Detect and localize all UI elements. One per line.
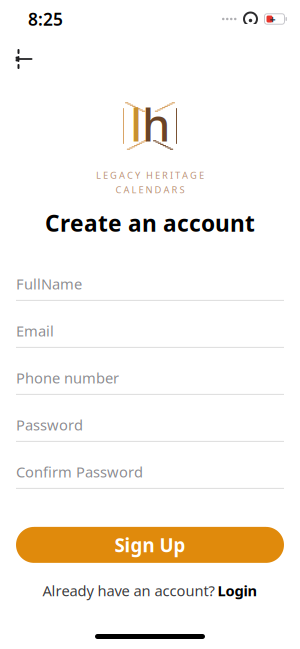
staticText: l	[130, 94, 142, 154]
button[interactable]: Back	[2, 42, 46, 76]
staticText: Create an account	[45, 208, 255, 238]
staticText: Login	[217, 581, 257, 600]
staticText: h	[142, 94, 170, 154]
staticText: +	[269, 12, 275, 26]
staticText: Password	[16, 415, 83, 435]
staticText: Confirm Password	[16, 462, 143, 482]
staticText: Already have an account?	[42, 581, 214, 600]
button[interactable]: Sign Up	[16, 527, 284, 563]
staticText: Email	[16, 321, 54, 341]
staticText: FullName	[16, 274, 82, 294]
staticText: 8:25	[28, 7, 63, 30]
staticText: L E G A C Y H E R I T A G E	[96, 169, 204, 181]
button[interactable]: Already have an account?	[32, 577, 267, 604]
staticText: Phone number	[16, 368, 119, 388]
staticText: C A L E N D A R S	[115, 183, 184, 196]
staticText: Sign Up	[114, 532, 185, 557]
